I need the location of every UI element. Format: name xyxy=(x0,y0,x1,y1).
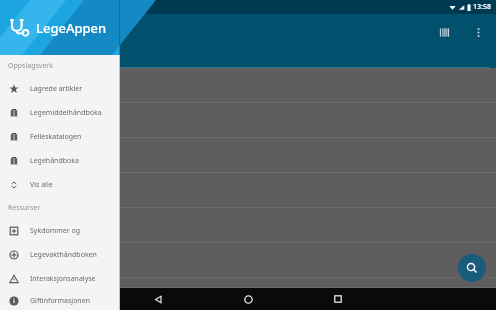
button[interactable]: Legevakthåndboken xyxy=(0,243,120,267)
staticText: Ressurser xyxy=(8,203,41,213)
button[interactable]: Vis alle xyxy=(0,173,120,197)
button[interactable]: Legemiddelhåndboka xyxy=(0,101,120,125)
staticText: Legehåndboka xyxy=(30,156,79,166)
button[interactable]: Legehåndboka xyxy=(0,149,120,173)
staticText: Sykdommer og behandlinger xyxy=(30,226,120,236)
button[interactable]: Felleskatalogen xyxy=(0,125,120,149)
button[interactable]: Scan xyxy=(434,22,454,42)
staticText: 13:58 xyxy=(473,2,491,12)
staticText: Lagrede artikler xyxy=(30,84,83,94)
staticText: Vis alle xyxy=(30,180,53,190)
button[interactable]: Home xyxy=(203,288,293,310)
button[interactable]: Sykdommer og behandlinger xyxy=(0,219,120,243)
staticText: Legemiddelhåndboka xyxy=(30,108,102,118)
staticText: Felleskatalogen xyxy=(30,132,82,142)
staticText: Legevakthåndboken xyxy=(30,250,97,260)
button[interactable]: Back xyxy=(113,288,203,310)
staticText: Oppslagsverk xyxy=(8,61,53,71)
staticText: Giftinformasjonen xyxy=(30,296,90,306)
staticText: LegeAppen xyxy=(36,19,107,37)
button[interactable]: Search xyxy=(458,254,486,282)
button[interactable]: Interaksjonsanalyse xyxy=(0,267,120,291)
button[interactable]: Giftinformasjonen xyxy=(0,291,120,310)
button[interactable]: Lagrede artikler xyxy=(0,77,120,101)
button[interactable]: Recents xyxy=(293,288,383,310)
staticText: Interaksjonsanalyse xyxy=(30,274,96,284)
button[interactable]: More options xyxy=(468,22,488,42)
